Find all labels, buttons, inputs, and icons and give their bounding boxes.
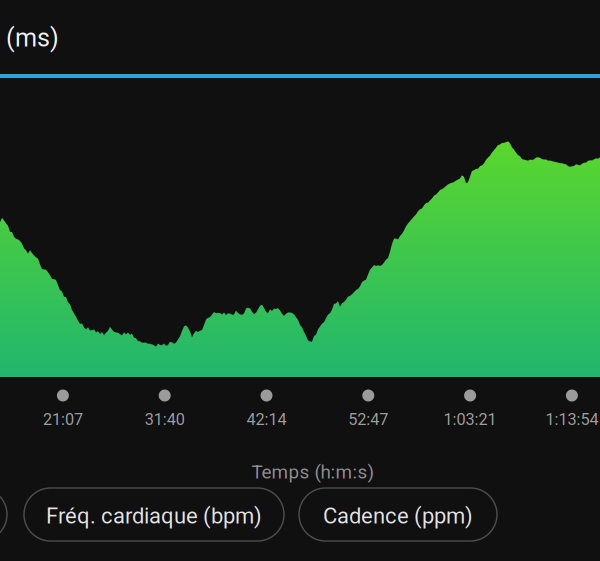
staticText: 1:03:21 bbox=[444, 410, 497, 429]
button[interactable]: Allure (min/km) bbox=[0, 488, 7, 541]
staticText: 1:13:54 bbox=[545, 410, 598, 429]
button[interactable]: Fréq. cardiaque (bpm) bbox=[24, 488, 284, 541]
staticText: 42:14 bbox=[246, 410, 286, 429]
staticText: 21:07 bbox=[43, 410, 83, 429]
staticText: 31:40 bbox=[145, 410, 185, 429]
staticText: Cadence (ppm) bbox=[323, 503, 473, 529]
staticText: 52:47 bbox=[348, 410, 388, 429]
staticText: Fréq. cardiaque (bpm) bbox=[46, 503, 262, 529]
staticText: (ms) bbox=[6, 23, 59, 53]
button[interactable]: Cadence (ppm) bbox=[299, 488, 497, 541]
staticText: Temps (h:m:s) bbox=[251, 461, 374, 483]
